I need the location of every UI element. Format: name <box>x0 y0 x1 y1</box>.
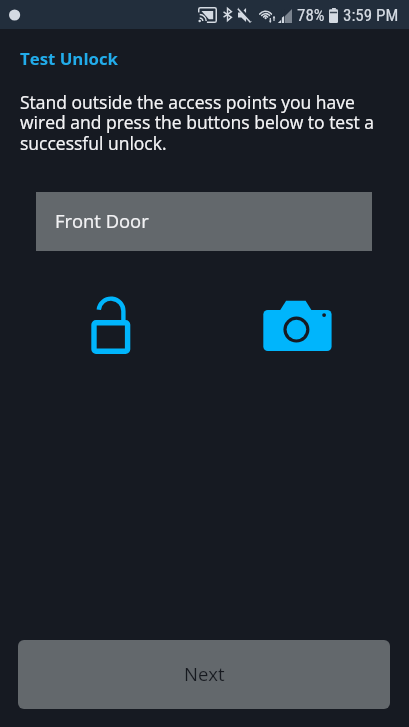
button[interactable]: Next <box>18 640 390 709</box>
button[interactable]: Unlock <box>80 288 142 362</box>
button[interactable]: Camera <box>255 292 340 360</box>
staticText: 78% <box>297 5 325 25</box>
staticText: Stand outside the access points you have… <box>20 90 380 156</box>
button[interactable]: Front Door <box>36 192 372 251</box>
staticText: Test Unlock <box>20 47 118 70</box>
staticText: Next <box>184 661 225 686</box>
staticText: 3:59 PM <box>343 5 399 25</box>
staticText: Front Door <box>55 208 149 233</box>
